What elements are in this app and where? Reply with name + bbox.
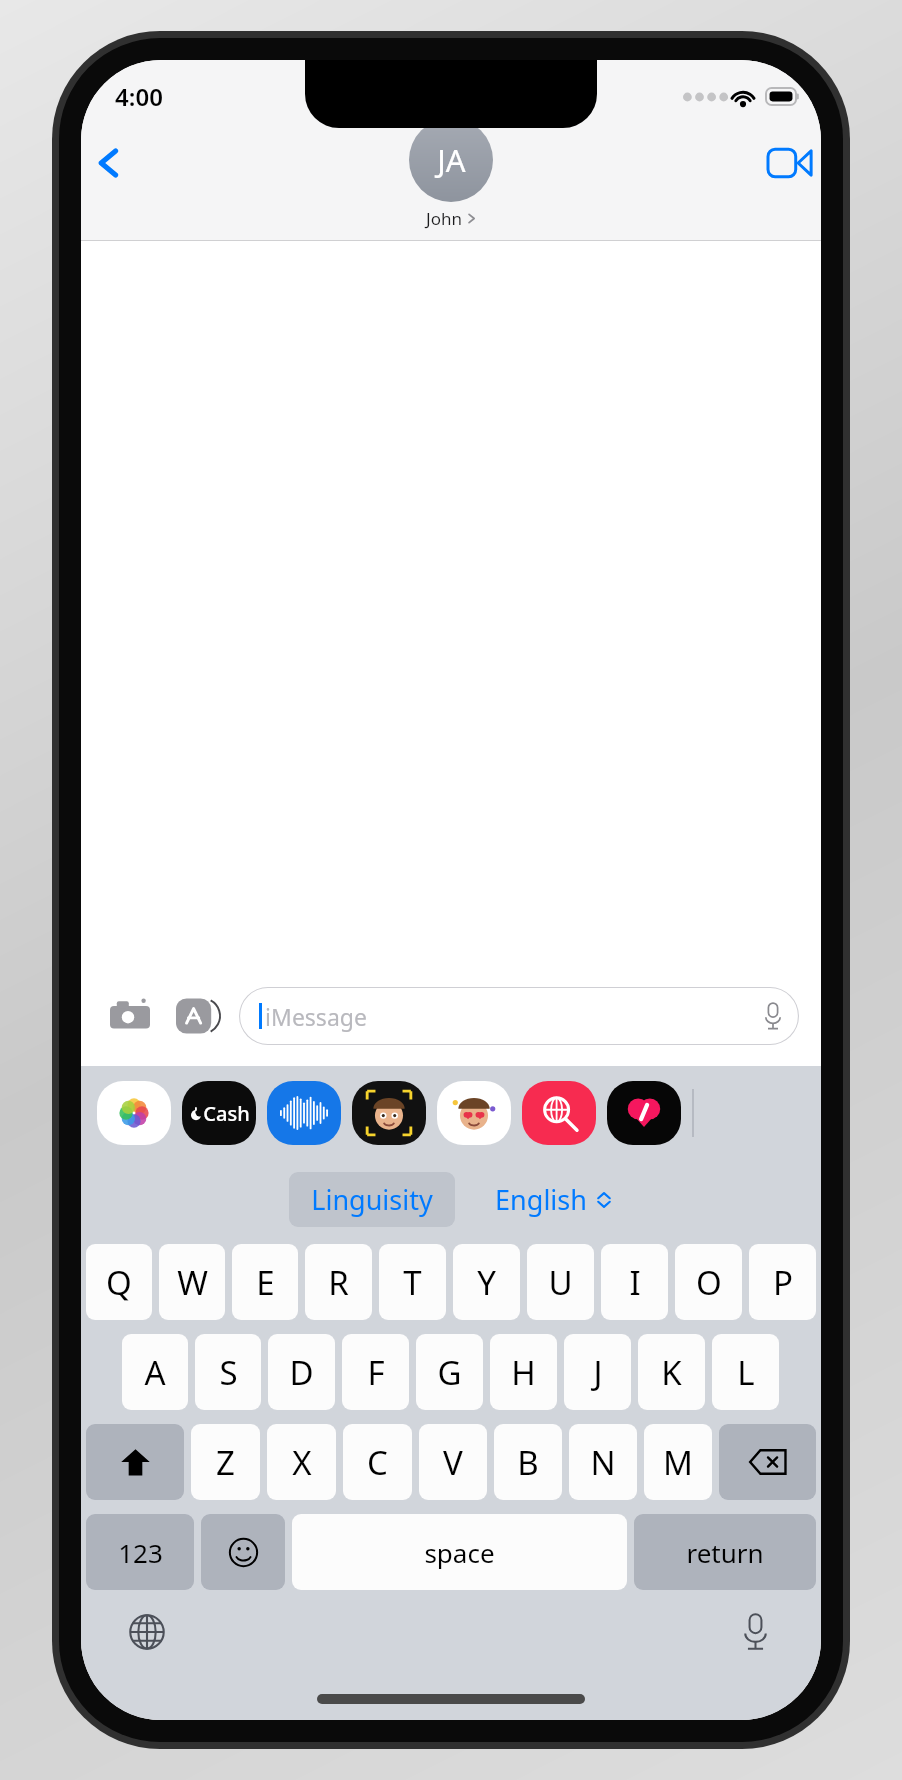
- button[interactable]: iMessage app: [437, 1081, 511, 1145]
- staticText: Q: [106, 1260, 132, 1305]
- button[interactable]: Dictate: [727, 1604, 783, 1660]
- button[interactable]: iMessage app: [352, 1081, 426, 1145]
- button[interactable]: iMessage app: [522, 1081, 596, 1145]
- button[interactable]: Linguisity: [289, 1172, 455, 1227]
- staticText: E: [256, 1260, 275, 1305]
- staticText: G: [437, 1350, 462, 1395]
- staticText: iMessage: [265, 1001, 367, 1032]
- button[interactable]: I: [601, 1244, 668, 1320]
- staticText: English: [495, 1181, 587, 1218]
- staticText: D: [289, 1350, 314, 1395]
- staticText: I: [629, 1260, 641, 1305]
- staticText: return: [686, 1535, 764, 1570]
- button[interactable]: J: [564, 1334, 631, 1410]
- button[interactable]: iMessage app: [267, 1081, 341, 1145]
- button[interactable]: Camera: [103, 989, 157, 1043]
- button[interactable]: K: [638, 1334, 705, 1410]
- staticText: A: [144, 1350, 166, 1395]
- button[interactable]: Back: [81, 135, 137, 191]
- button[interactable]: 123: [86, 1514, 194, 1590]
- staticText: 123: [118, 1535, 163, 1570]
- staticText: L: [737, 1350, 755, 1395]
- button[interactable]: B: [494, 1424, 562, 1500]
- staticText: O: [696, 1260, 722, 1305]
- button[interactable]: H: [490, 1334, 557, 1410]
- staticText: Y: [477, 1260, 496, 1305]
- button[interactable]: G: [416, 1334, 483, 1410]
- staticText: S: [219, 1350, 238, 1395]
- button[interactable]: U: [527, 1244, 594, 1320]
- staticText: Cash: [203, 1100, 250, 1127]
- staticText: J: [593, 1350, 603, 1395]
- staticText: N: [590, 1440, 616, 1485]
- button[interactable]: N: [569, 1424, 637, 1500]
- button[interactable]: L: [712, 1334, 779, 1410]
- button[interactable]: C: [343, 1424, 412, 1500]
- button[interactable]: English: [495, 1181, 613, 1218]
- staticText: JA: [437, 139, 466, 181]
- staticText: F: [367, 1350, 385, 1395]
- staticText: P: [773, 1260, 793, 1305]
- button[interactable]: M: [644, 1424, 712, 1500]
- button[interactable]: return: [634, 1514, 816, 1590]
- button[interactable]: Change keyboard language: [119, 1604, 175, 1660]
- button[interactable]: E: [232, 1244, 298, 1320]
- staticText: space: [424, 1535, 495, 1570]
- button[interactable]: W: [159, 1244, 225, 1320]
- staticText: 4:00: [115, 80, 163, 113]
- staticText: R: [328, 1260, 349, 1305]
- button[interactable]: X: [267, 1424, 336, 1500]
- staticText: K: [661, 1350, 682, 1395]
- button[interactable]: JA: [409, 118, 493, 230]
- button[interactable]: iMessage app: [97, 1081, 171, 1145]
- button[interactable]: Emoji: [201, 1514, 285, 1590]
- staticText: U: [548, 1260, 573, 1305]
- staticText: X: [292, 1440, 312, 1485]
- button[interactable]: V: [419, 1424, 487, 1500]
- button[interactable]: Q: [86, 1244, 152, 1320]
- button[interactable]: A: [122, 1334, 188, 1410]
- button[interactable]: T: [379, 1244, 446, 1320]
- button[interactable]: R: [305, 1244, 372, 1320]
- staticText: M: [663, 1440, 693, 1485]
- button[interactable]: FaceTime video call: [759, 132, 821, 194]
- staticText: John: [426, 207, 462, 230]
- staticText: T: [403, 1260, 422, 1305]
- button[interactable]: Y: [453, 1244, 520, 1320]
- staticText: H: [511, 1350, 536, 1395]
- button[interactable]: F: [342, 1334, 409, 1410]
- button[interactable]: O: [675, 1244, 742, 1320]
- button[interactable]: P: [749, 1244, 816, 1320]
- button[interactable]: Apps: [171, 989, 225, 1043]
- staticText: W: [177, 1260, 208, 1305]
- staticText: Linguisity: [311, 1181, 433, 1218]
- button[interactable]: D: [268, 1334, 335, 1410]
- button[interactable]: Delete: [719, 1424, 816, 1500]
- staticText: B: [517, 1440, 539, 1485]
- button[interactable]: iMessage: [239, 987, 799, 1045]
- button[interactable]: iMessage app: [607, 1081, 681, 1145]
- staticText: V: [443, 1440, 463, 1485]
- staticText: C: [367, 1440, 388, 1485]
- button[interactable]: iMessage app: [182, 1081, 256, 1145]
- button[interactable]: Shift: [86, 1424, 184, 1500]
- button[interactable]: space: [292, 1514, 627, 1590]
- staticText: Z: [216, 1440, 235, 1485]
- button[interactable]: S: [195, 1334, 261, 1410]
- button[interactable]: Z: [191, 1424, 260, 1500]
